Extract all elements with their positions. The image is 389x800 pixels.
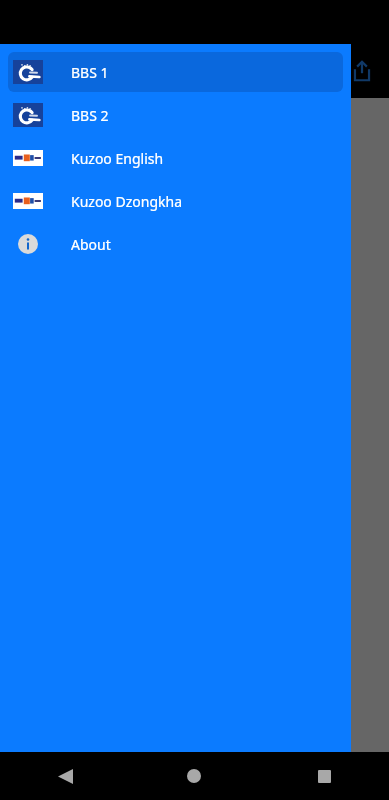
button[interactable]: BBS 1 (8, 52, 343, 92)
button[interactable]: Back (41, 752, 89, 800)
staticText: Last started: - (8, 112, 92, 130)
button[interactable]: Kuzoo English (8, 138, 343, 178)
button[interactable]: Kuzoo Dzongkha (8, 181, 343, 221)
button[interactable]: Recent apps (300, 752, 348, 800)
staticText: BBS 1 (71, 63, 109, 82)
button[interactable]: Home (170, 752, 218, 800)
staticText: Kuzoo English (71, 149, 164, 168)
button[interactable]: Share (341, 50, 383, 92)
button[interactable]: BBS 2 (8, 95, 343, 135)
button[interactable]: About (8, 224, 343, 264)
staticText: BBS 2 (71, 106, 109, 125)
staticText: Kuzoo Dzongkha (71, 192, 182, 211)
staticText: About (71, 235, 111, 254)
